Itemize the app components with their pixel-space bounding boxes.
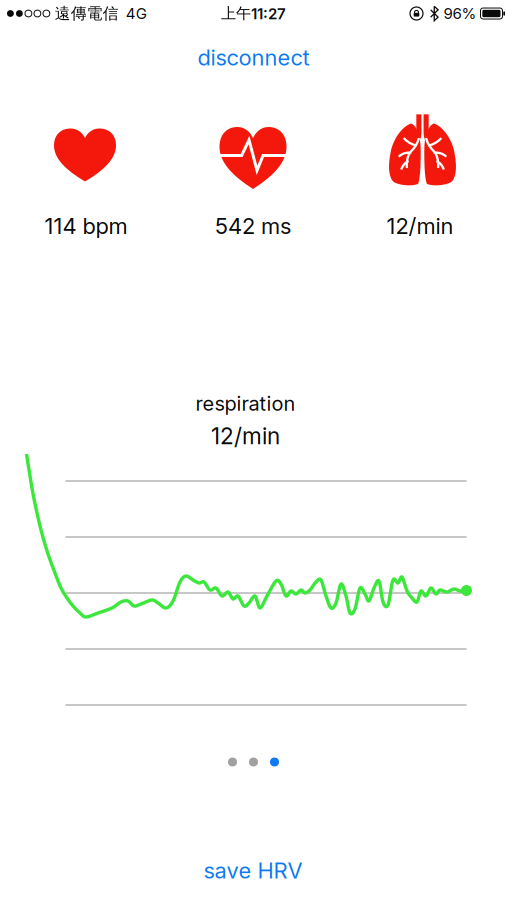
staticText: respiration xyxy=(195,391,295,416)
staticText: 上午11:27 xyxy=(221,4,286,23)
staticText: disconnect xyxy=(197,44,309,71)
staticText: 12/min xyxy=(386,213,453,239)
staticText: 542 ms xyxy=(215,213,291,239)
staticText: 96% xyxy=(443,4,476,23)
staticText: 12/min xyxy=(211,422,280,450)
button[interactable]: Page control xyxy=(228,757,279,766)
staticText: 4G xyxy=(126,4,147,23)
staticText: save HRV xyxy=(203,857,302,884)
button[interactable]: disconnect xyxy=(197,44,309,71)
button[interactable]: save HRV xyxy=(203,857,302,884)
staticText: 114 bpm xyxy=(44,213,127,239)
staticText: 遠傳電信 xyxy=(55,4,119,23)
